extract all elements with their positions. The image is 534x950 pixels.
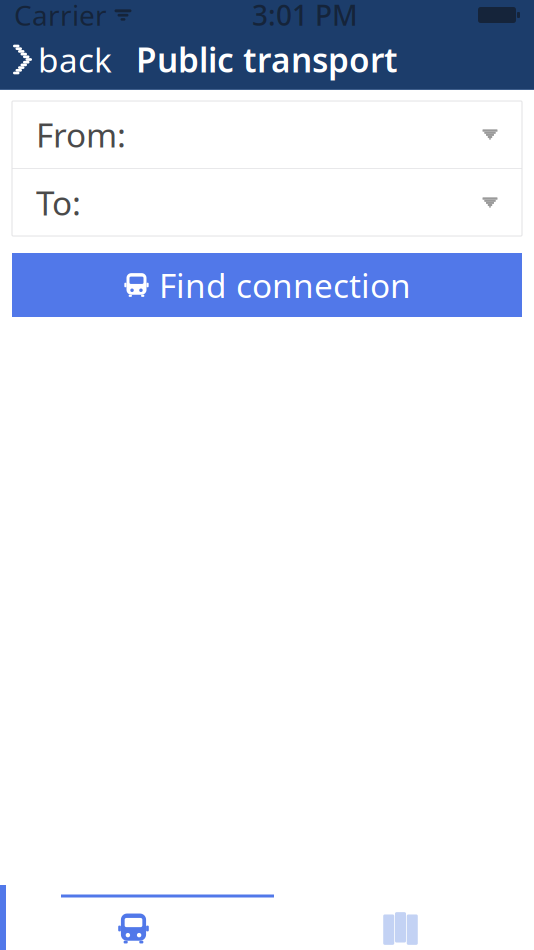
staticText: Public transport <box>136 37 398 82</box>
staticText: From: <box>36 112 126 157</box>
staticText: 3:01 PM <box>252 0 358 34</box>
staticText: To: <box>36 180 81 225</box>
button[interactable]: back <box>0 30 126 88</box>
button[interactable]: Public transport <box>0 903 267 950</box>
staticText: Carrier <box>14 0 107 34</box>
staticText: back <box>38 37 112 82</box>
button[interactable]: From: <box>12 101 522 168</box>
button[interactable]: Find connection <box>12 253 522 317</box>
button[interactable]: Map <box>267 903 534 950</box>
staticText: Find connection <box>159 263 411 307</box>
button[interactable]: To: <box>12 169 522 236</box>
